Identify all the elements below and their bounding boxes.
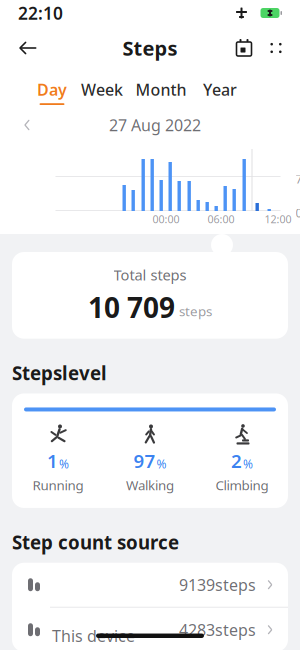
button[interactable]: Month bbox=[130, 77, 192, 107]
button[interactable]: Back bbox=[8, 28, 48, 68]
staticText: 0 bbox=[295, 205, 300, 221]
staticText: 97 bbox=[133, 448, 155, 473]
staticText: Month bbox=[135, 79, 186, 100]
button[interactable]: Calendar bbox=[228, 28, 260, 68]
staticText: 700 bbox=[295, 171, 300, 187]
staticText: Steps bbox=[122, 35, 177, 61]
staticText: Stepslevel bbox=[12, 361, 107, 385]
staticText: Year bbox=[203, 79, 237, 100]
button[interactable]: Previous day bbox=[12, 112, 42, 138]
button[interactable]: Year bbox=[192, 77, 248, 107]
staticText: Total steps bbox=[113, 265, 186, 284]
staticText: 10 709 bbox=[88, 288, 175, 326]
staticText: steps bbox=[179, 302, 212, 320]
staticText: 9139steps bbox=[179, 574, 256, 595]
staticText: 27 Aug 2022 bbox=[109, 114, 201, 136]
staticText: Step count source bbox=[12, 530, 179, 555]
button[interactable]: Week bbox=[74, 77, 130, 107]
staticText: Running bbox=[32, 476, 83, 494]
button[interactable]: This device bbox=[12, 608, 288, 650]
staticText: 2 bbox=[231, 448, 242, 473]
staticText: Week bbox=[81, 79, 123, 100]
staticText: Climbing bbox=[215, 476, 268, 494]
staticText: Walking bbox=[126, 476, 174, 494]
staticText: 22:10 bbox=[18, 1, 63, 24]
staticText: 4283steps bbox=[179, 619, 256, 640]
button[interactable] bbox=[12, 563, 288, 607]
staticText: 12:00 bbox=[264, 212, 291, 226]
staticText: 06:00 bbox=[207, 212, 234, 226]
staticText: Day bbox=[37, 79, 67, 100]
staticText: This device bbox=[52, 625, 135, 646]
button[interactable]: Day bbox=[30, 77, 74, 107]
button[interactable]: More options bbox=[260, 28, 292, 68]
staticText: 1 bbox=[47, 448, 58, 473]
staticText: % bbox=[59, 456, 69, 472]
staticText: 00:00 bbox=[152, 212, 179, 226]
staticText: % bbox=[156, 456, 166, 472]
staticText: % bbox=[243, 456, 253, 472]
